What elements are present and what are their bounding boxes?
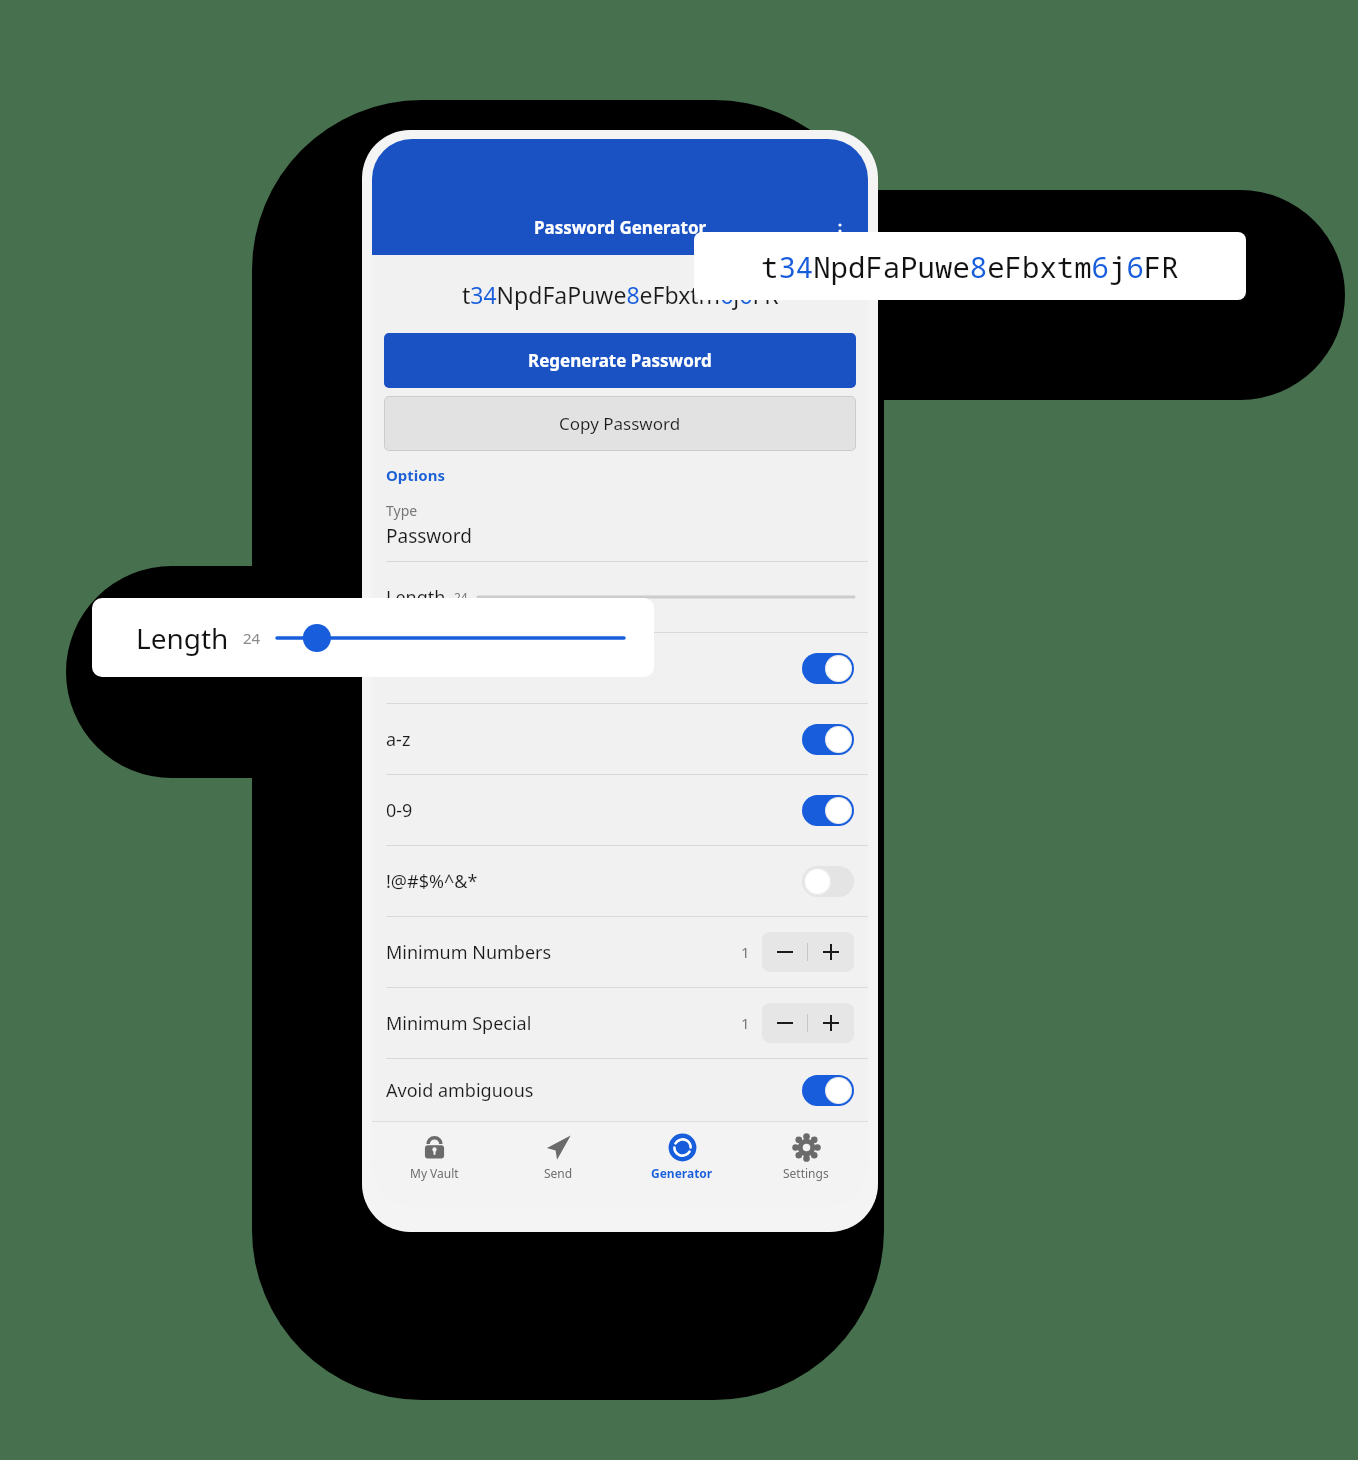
button[interactable]: More options: [820, 211, 860, 251]
staticText: !@#$%^&*: [386, 869, 802, 894]
button[interactable]: !@#$%^&*: [372, 846, 868, 916]
button[interactable]: a-z: [372, 704, 868, 774]
button[interactable]: Avoid ambiguous: [372, 1059, 868, 1121]
button[interactable]: Generator: [620, 1122, 744, 1206]
staticText: Copy Password: [559, 412, 681, 435]
staticText: t34NpdFaPuwe8eFbxtm6j6FR: [761, 247, 1179, 286]
staticText: Send: [544, 1165, 573, 1181]
staticText: Type: [386, 501, 418, 520]
staticText: Minimum Numbers: [386, 940, 741, 965]
staticText: Minimum Special: [386, 1011, 741, 1036]
button[interactable]: Regenerate Password: [384, 333, 856, 388]
staticText: t34NpdFaPuwe8eFbxtm6j6FR: [462, 279, 779, 310]
staticText: 1: [741, 942, 750, 962]
staticText: Password Generator: [534, 216, 707, 239]
staticText: Length: [136, 619, 229, 657]
button[interactable]: Increase Minimum Special: [808, 1003, 854, 1043]
staticText: 24: [243, 628, 261, 648]
button[interactable]: 0-9: [372, 775, 868, 845]
staticText: 24: [454, 589, 468, 605]
staticText: Length: [386, 585, 446, 610]
button[interactable]: Send: [496, 1122, 620, 1206]
staticText: Options: [386, 465, 445, 485]
staticText: a-z: [386, 727, 802, 752]
staticText: A-Z: [386, 656, 802, 681]
button[interactable]: Settings: [744, 1122, 868, 1206]
staticText: Regenerate Password: [528, 349, 712, 372]
button[interactable]: A-Z: [372, 633, 868, 703]
button[interactable]: t34NpdFaPuwe8eFbxtm6j6FR: [372, 255, 868, 333]
staticText: My Vault: [410, 1165, 459, 1181]
button[interactable]: Decrease Minimum Special: [762, 1003, 807, 1043]
staticText: Avoid ambiguous: [386, 1078, 802, 1103]
staticText: Settings: [783, 1165, 829, 1181]
button[interactable]: Copy Password: [384, 396, 856, 451]
button[interactable]: Password: [372, 523, 868, 561]
staticText: 1: [741, 1013, 750, 1033]
button[interactable]: Length: [372, 562, 868, 632]
staticText: 0-9: [386, 798, 802, 823]
button[interactable]: Decrease Minimum Numbers: [762, 932, 807, 972]
staticText: Password: [386, 523, 472, 549]
button[interactable]: My Vault: [372, 1122, 496, 1206]
button[interactable]: Increase Minimum Numbers: [808, 932, 854, 972]
staticText: Generator: [651, 1165, 713, 1181]
